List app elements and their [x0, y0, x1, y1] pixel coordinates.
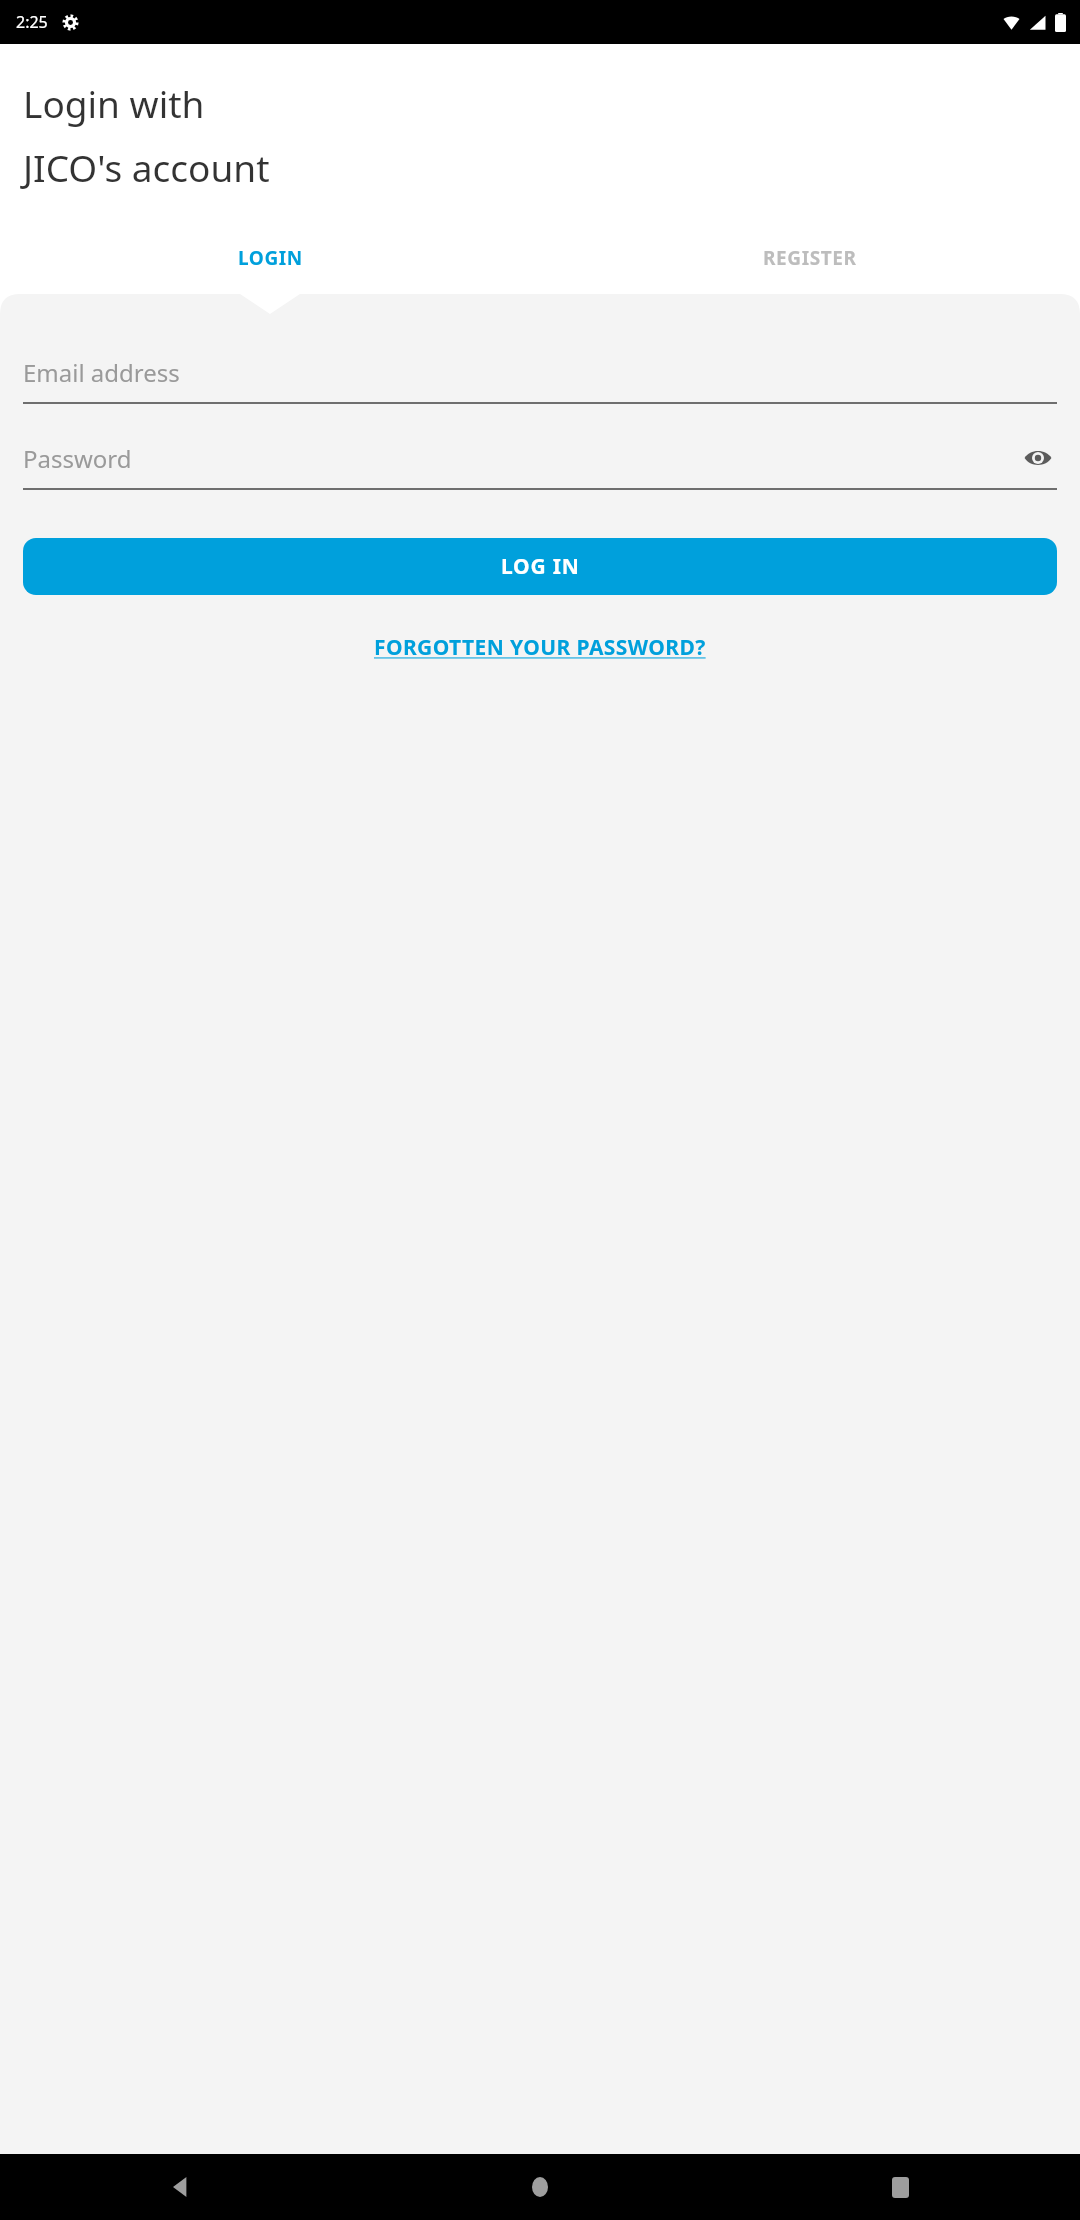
staticText: Login with: [23, 78, 205, 128]
button[interactable]: Email address: [23, 350, 1057, 404]
staticText: JICO's account: [23, 142, 270, 192]
button[interactable]: FORGOTTEN YOUR PASSWORD?: [366, 629, 714, 666]
button[interactable]: Recent apps: [720, 2154, 1080, 2220]
button[interactable]: LOGIN: [0, 238, 540, 278]
button[interactable]: REGISTER: [540, 238, 1080, 278]
staticText: Email address: [23, 356, 180, 389]
button[interactable]: Home: [360, 2154, 720, 2220]
staticText: Password: [23, 442, 132, 475]
staticText: LOG IN: [501, 552, 580, 581]
staticText: 2:25: [16, 11, 48, 33]
staticText: FORGOTTEN YOUR PASSWORD?: [374, 633, 706, 662]
staticText: REGISTER: [763, 245, 857, 271]
button[interactable]: LOG IN: [23, 538, 1057, 595]
button[interactable]: Password: [23, 436, 1057, 490]
staticText: LOGIN: [238, 245, 303, 271]
button[interactable]: Back: [0, 2154, 360, 2220]
button[interactable]: Show password: [1019, 439, 1057, 477]
